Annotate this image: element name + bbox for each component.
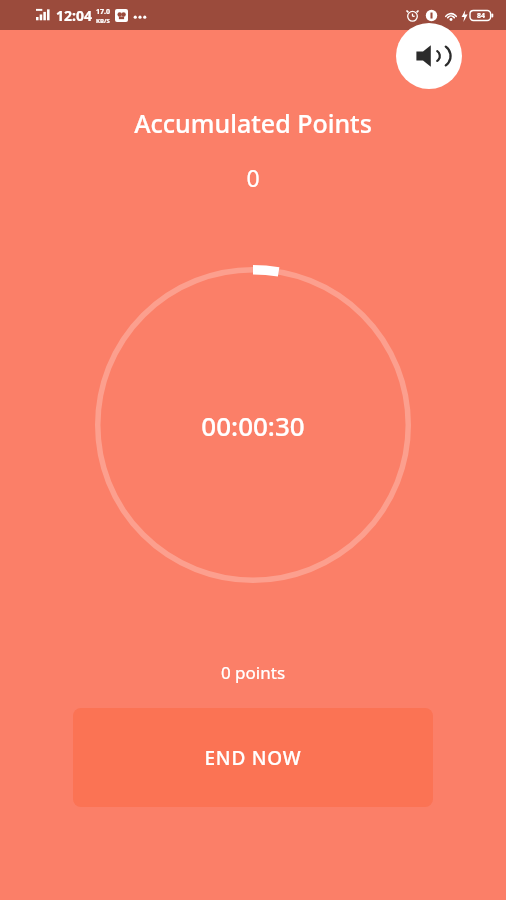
button[interactable]: END NOW [73,708,433,807]
staticText: 17.0 [96,7,110,17]
staticText: 0 [0,162,506,193]
staticText: Accumulated Points [0,106,506,140]
staticText: 84 [477,11,486,21]
staticText: 0 points [0,661,506,684]
staticText: END NOW [204,745,302,771]
staticText: 00:00:30 [201,408,305,443]
staticText: 12:04 [56,6,92,25]
staticText: KB/S [96,17,110,25]
button[interactable]: Toggle sound [396,23,462,89]
